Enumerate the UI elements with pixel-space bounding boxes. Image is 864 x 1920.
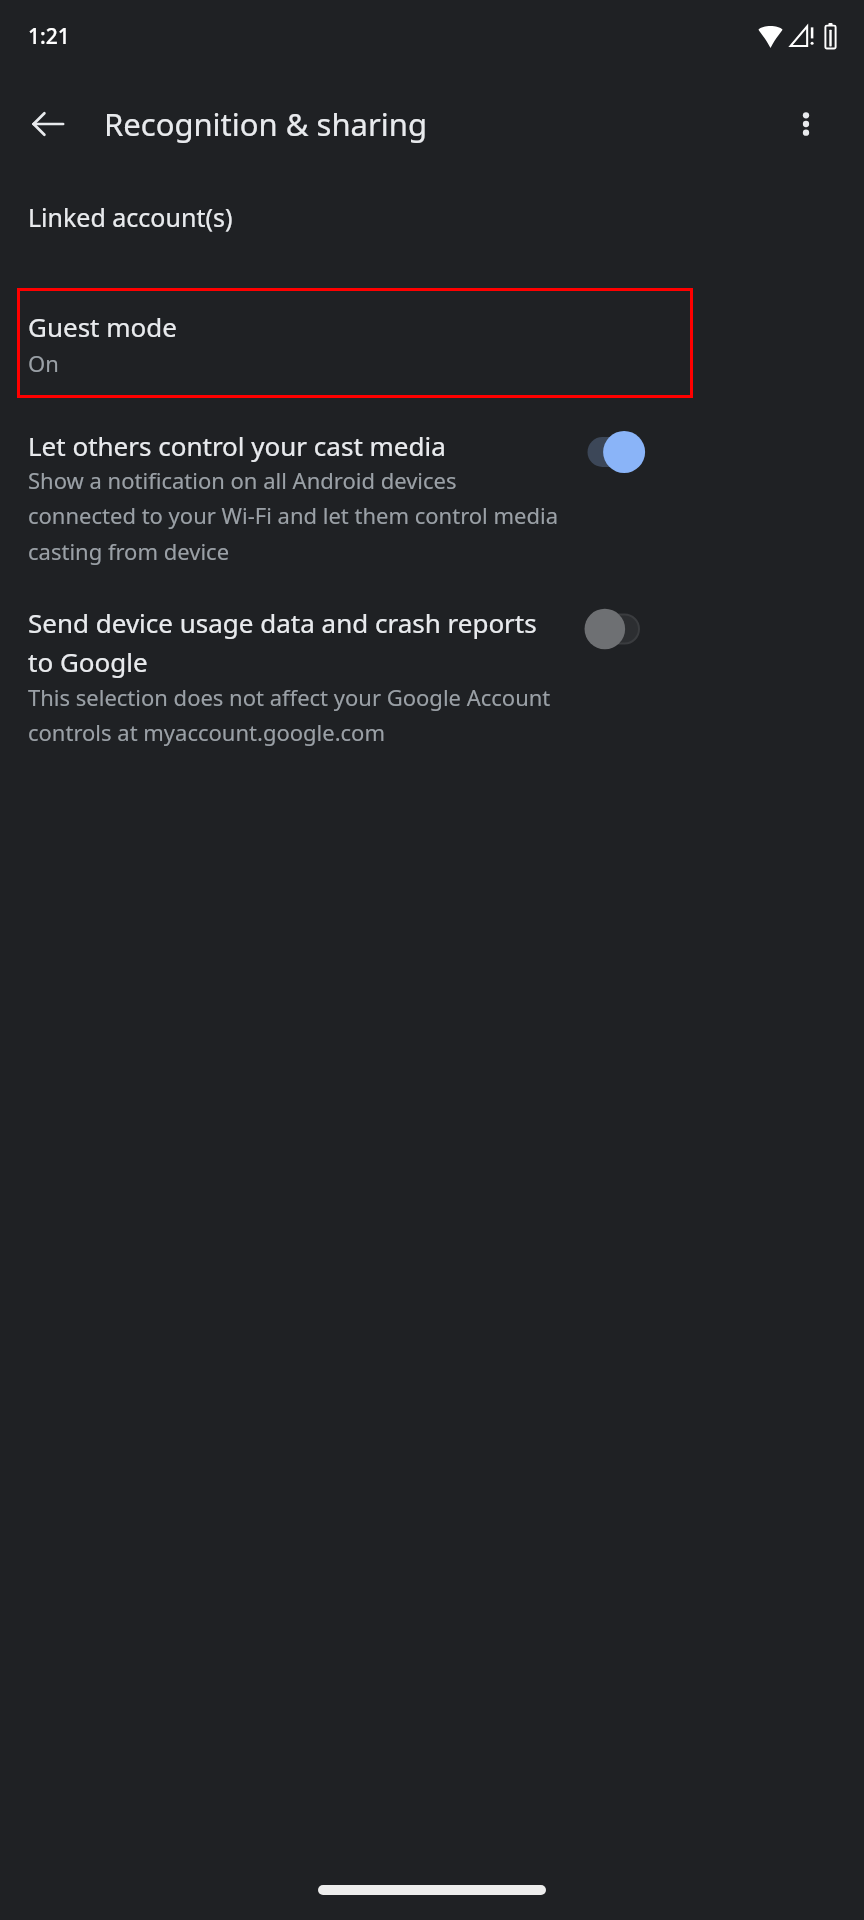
other: No mobile service [790,24,816,48]
button[interactable]: Send device usage data and crash reports… [0,597,864,756]
button[interactable]: Off [578,605,650,653]
staticText: Guest mode [28,309,177,344]
other: Battery [823,23,838,49]
staticText: Show a notification on all Android devic… [28,465,568,567]
staticText: Let others control your cast media [28,428,446,463]
staticText: Send device usage data and crash reports… [28,605,568,680]
button[interactable]: Let others control your cast media [0,420,864,575]
staticText: Linked account(s) [28,200,233,234]
staticText: 1:21 [28,22,70,51]
staticText: This selection does not affect your Goog… [28,682,568,748]
button[interactable]: Navigate up [12,88,84,160]
button[interactable]: More options [774,92,838,156]
staticText: Recognition & sharing [104,103,427,145]
button[interactable]: Guest mode [17,288,693,398]
button[interactable]: On [578,428,650,476]
other: Wi-Fi connected [758,24,783,49]
staticText: On [28,348,59,378]
